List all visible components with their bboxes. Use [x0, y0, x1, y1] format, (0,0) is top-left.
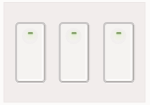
- button[interactable]: Light switch: [15, 22, 46, 83]
- button[interactable]: Light switch: [59, 22, 90, 83]
- button[interactable]: Light switch: [103, 22, 134, 83]
